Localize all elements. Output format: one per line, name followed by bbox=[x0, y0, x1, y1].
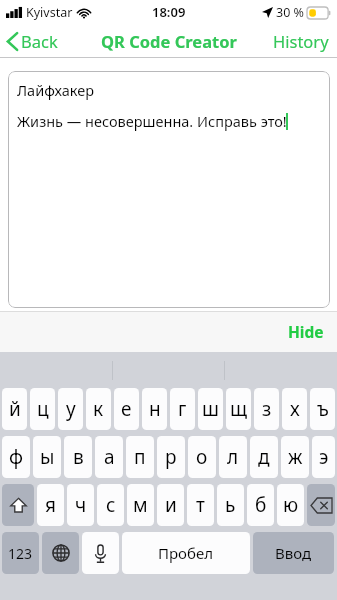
staticText: т bbox=[196, 492, 205, 518]
button[interactable]: я bbox=[37, 484, 64, 526]
button[interactable]: у bbox=[58, 388, 83, 430]
button[interactable]: т bbox=[187, 484, 214, 526]
button[interactable]: Back bbox=[0, 26, 68, 56]
staticText: 123 bbox=[8, 544, 33, 563]
button[interactable]: ч bbox=[67, 484, 94, 526]
staticText: с bbox=[106, 492, 116, 518]
staticText: л bbox=[227, 444, 239, 470]
button[interactable]: ш bbox=[198, 388, 223, 430]
button[interactable]: ь bbox=[217, 484, 244, 526]
button[interactable]: ы bbox=[33, 436, 61, 478]
button[interactable]: Backspace bbox=[307, 484, 335, 526]
button[interactable]: ц bbox=[30, 388, 55, 430]
button[interactable]: о bbox=[188, 436, 216, 478]
button[interactable]: н bbox=[142, 388, 167, 430]
button[interactable]: э bbox=[312, 436, 335, 478]
staticText: ш bbox=[202, 396, 219, 422]
staticText: а bbox=[104, 444, 115, 470]
button[interactable]: к bbox=[86, 388, 111, 430]
staticText: History bbox=[273, 30, 329, 52]
button[interactable]: Пробел bbox=[122, 532, 250, 574]
staticText: э bbox=[319, 444, 329, 470]
button[interactable]: Лайфхакер bbox=[8, 71, 330, 308]
button[interactable]: щ bbox=[226, 388, 251, 430]
button[interactable]: Hide bbox=[275, 315, 337, 348]
staticText: ы bbox=[40, 444, 55, 470]
staticText: 30 % bbox=[276, 4, 304, 21]
staticText: Hide bbox=[288, 321, 324, 342]
button[interactable]: Ввод bbox=[253, 532, 334, 574]
staticText: в bbox=[73, 444, 84, 470]
button[interactable]: с bbox=[97, 484, 124, 526]
staticText: к bbox=[93, 396, 104, 422]
button[interactable]: д bbox=[250, 436, 278, 478]
button[interactable]: в bbox=[64, 436, 92, 478]
button[interactable]: й bbox=[2, 388, 27, 430]
staticText: б bbox=[255, 492, 267, 518]
button[interactable]: е bbox=[114, 388, 139, 430]
staticText: и bbox=[165, 492, 177, 518]
button[interactable]: г bbox=[170, 388, 195, 430]
staticText: QR Code Creator bbox=[101, 30, 237, 52]
staticText: щ bbox=[230, 396, 248, 422]
staticText: о bbox=[196, 444, 208, 470]
staticText: р bbox=[165, 444, 177, 470]
staticText: 18:09 bbox=[152, 3, 186, 21]
staticText: Back bbox=[21, 30, 58, 52]
staticText: г bbox=[178, 396, 187, 422]
button[interactable]: з bbox=[254, 388, 279, 430]
button[interactable]: р bbox=[157, 436, 185, 478]
button[interactable]: м bbox=[127, 484, 154, 526]
staticText: м bbox=[133, 492, 148, 518]
staticText: ъ bbox=[317, 396, 329, 422]
staticText: ж bbox=[288, 444, 303, 470]
staticText: е bbox=[121, 396, 132, 422]
button[interactable]: 123 bbox=[2, 532, 39, 574]
staticText: ч bbox=[75, 492, 87, 518]
staticText: Пробел bbox=[158, 543, 214, 563]
button[interactable]: ъ bbox=[310, 388, 335, 430]
button[interactable]: ю bbox=[277, 484, 304, 526]
staticText: х bbox=[290, 396, 300, 422]
staticText: Kyivstar bbox=[26, 4, 73, 21]
staticText: Жизнь — несовершенна. Исправь это! bbox=[17, 111, 287, 131]
staticText: ц bbox=[37, 396, 49, 422]
button[interactable]: и bbox=[157, 484, 184, 526]
button[interactable]: Dictate bbox=[82, 532, 119, 574]
staticText: й bbox=[9, 396, 21, 422]
button[interactable]: а bbox=[95, 436, 123, 478]
staticText: у bbox=[66, 396, 76, 422]
button[interactable]: ф bbox=[2, 436, 30, 478]
button[interactable]: Shift bbox=[2, 484, 34, 526]
staticText: п bbox=[134, 444, 146, 470]
staticText: н bbox=[149, 396, 161, 422]
button[interactable]: п bbox=[126, 436, 154, 478]
staticText: ф bbox=[9, 444, 24, 470]
button[interactable]: Change keyboard bbox=[42, 532, 79, 574]
button[interactable]: History bbox=[265, 26, 337, 56]
button[interactable]: б bbox=[247, 484, 274, 526]
staticText: з bbox=[262, 396, 272, 422]
staticText: д bbox=[258, 444, 270, 470]
staticText: ю bbox=[283, 492, 299, 518]
button[interactable]: л bbox=[219, 436, 247, 478]
staticText: ь bbox=[225, 492, 236, 518]
button[interactable]: х bbox=[282, 388, 307, 430]
button[interactable]: ж bbox=[281, 436, 309, 478]
staticText: я bbox=[45, 492, 56, 518]
staticText: Лайфхакер bbox=[17, 80, 94, 100]
staticText: Ввод bbox=[275, 543, 312, 563]
